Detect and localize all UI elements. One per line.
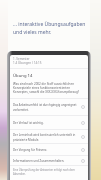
staticText: Eine Überprüfung der Antworten erfolgt n…: [13, 168, 88, 176]
staticText: ... interaktive Übungsaufgaben: [13, 21, 86, 28]
staticText: Das Arbeitsumfeld ist durchgängig ungeei…: [13, 103, 79, 111]
staticText: Informationen und Zusammenhalten.: [13, 159, 79, 163]
staticText: Der Vorgang für Präsenz.: [13, 148, 79, 152]
staticText: Der Verlauf ist wichtig.: [13, 121, 79, 125]
staticText: 1. Semester: [13, 57, 30, 61]
staticText: Was sind nach 2002 die Stoff aussichtlic…: [13, 82, 85, 94]
button[interactable]: Der Vorgang für Präsenz.: [10, 144, 88, 155]
button[interactable]: Das Arbeitsumfeld ist durchgängig ungeei…: [10, 99, 88, 115]
staticText: Der Lerninhalt wird kontinuierlich unter…: [13, 133, 79, 141]
button[interactable]: Informationen und Zusammenhalten.: [10, 156, 88, 165]
staticText: Übung 14: [13, 73, 33, 79]
button[interactable]: Der Verlauf ist wichtig.: [10, 116, 88, 129]
staticText: und vieles mehr.: [13, 29, 52, 36]
button[interactable]: Der Lerninhalt wird kontinuierlich unter…: [10, 130, 88, 143]
staticText: 1.4 Übungen / 14:15: [13, 61, 42, 65]
